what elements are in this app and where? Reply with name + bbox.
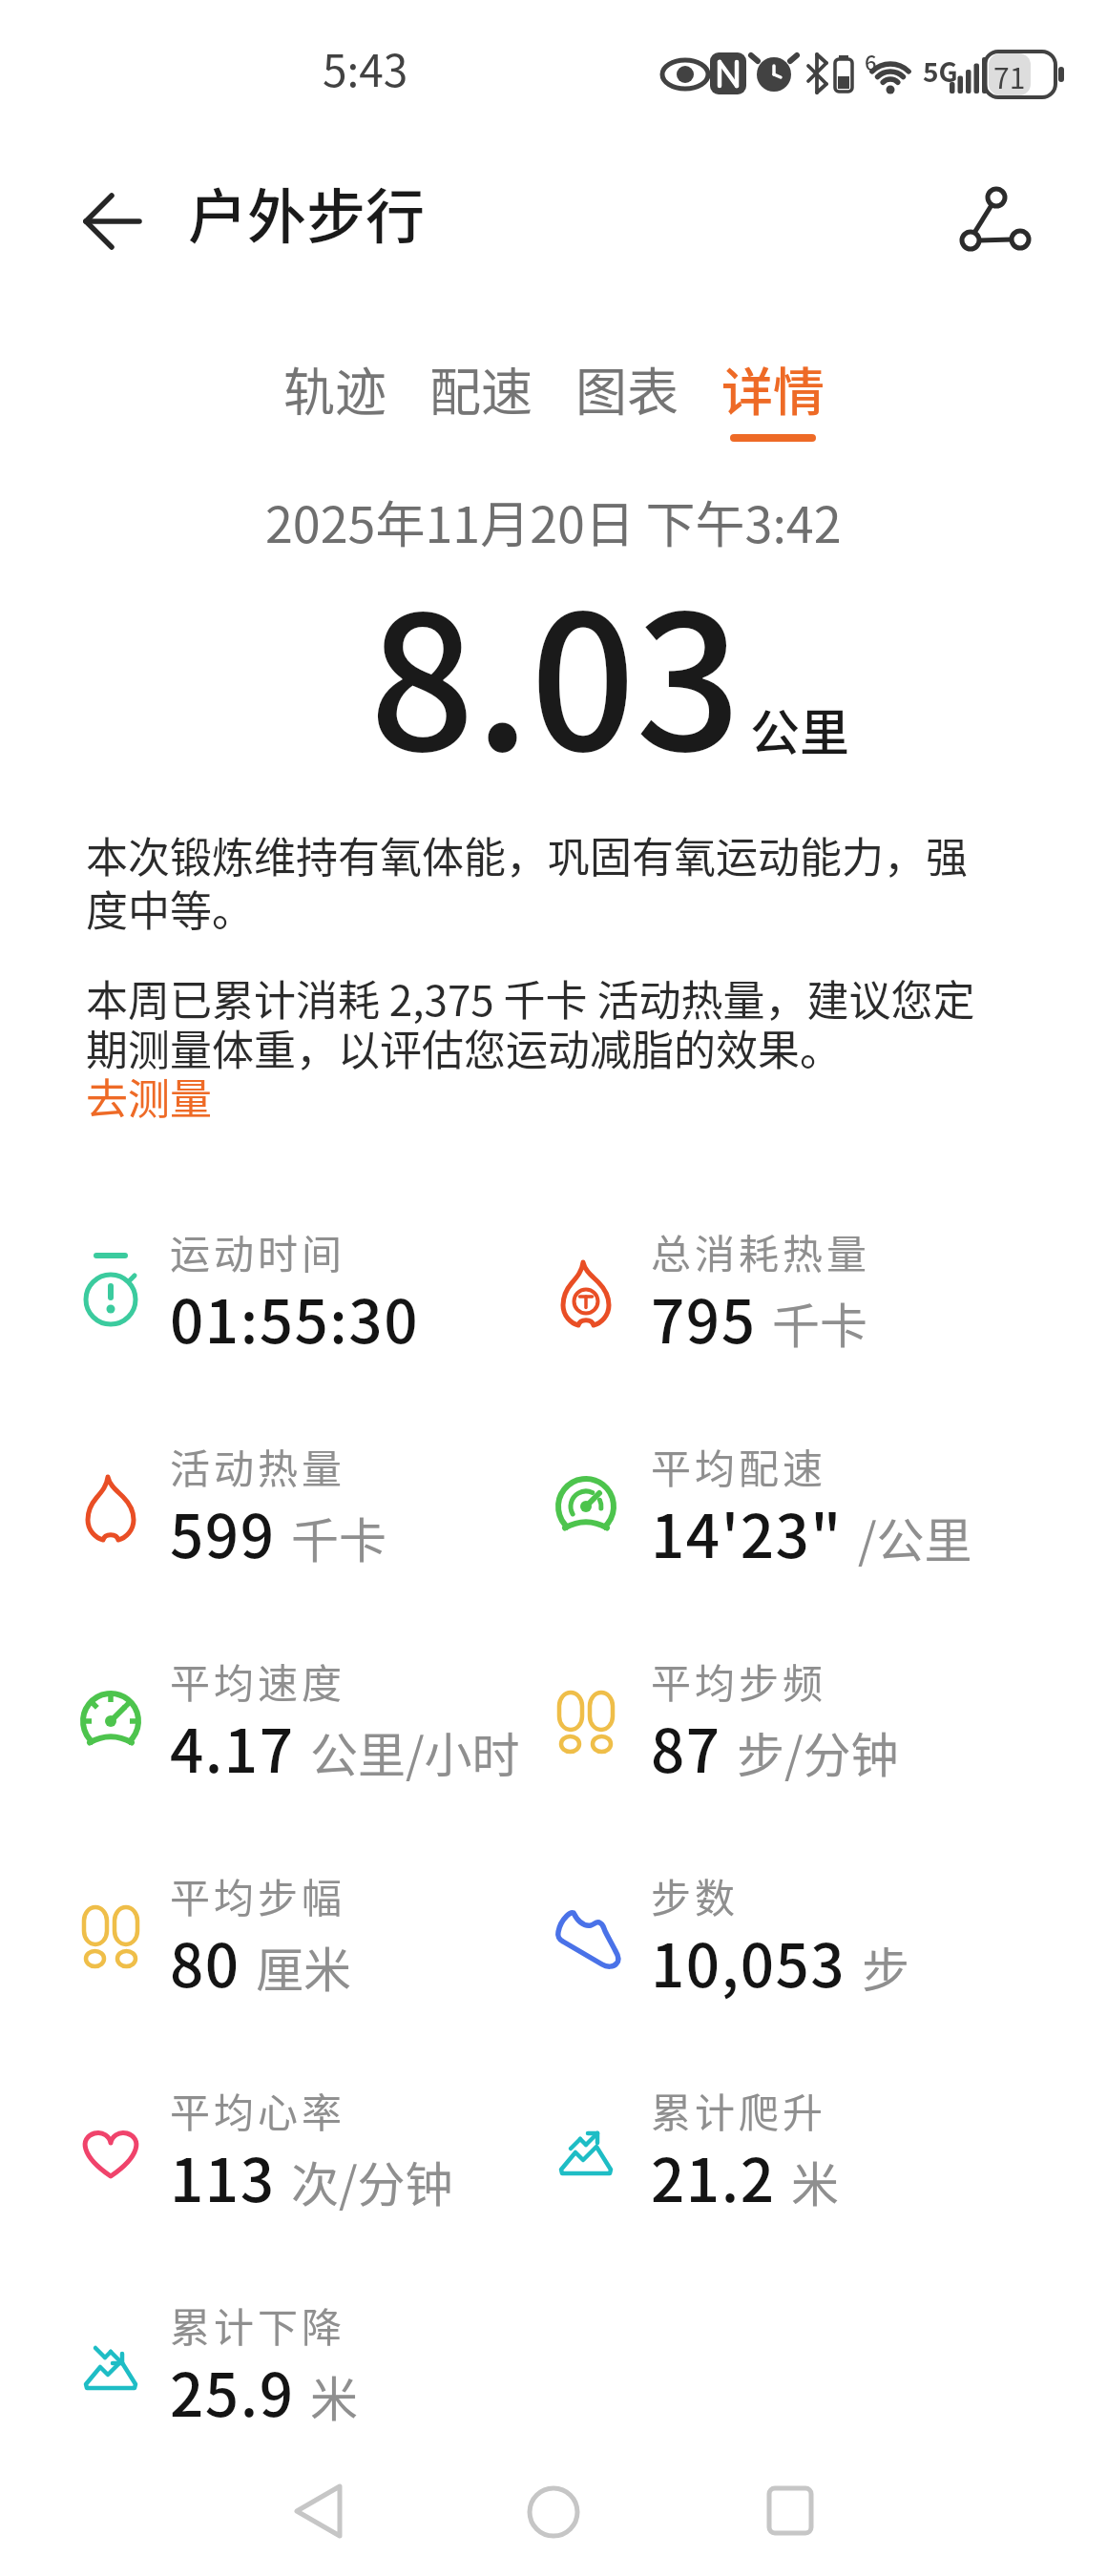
button[interactable] bbox=[59, 170, 155, 265]
staticText: 详情 bbox=[721, 351, 825, 426]
staticText: 累计下降 bbox=[170, 2296, 346, 2354]
button[interactable]: 去测量 bbox=[86, 1066, 212, 1127]
button[interactable]: 图表 bbox=[575, 351, 679, 426]
staticText: 本次锻炼维持有氧体能，巩固有氧运动能力，强 bbox=[86, 824, 968, 885]
staticText: 平均步幅 bbox=[170, 1866, 346, 1924]
staticText: 平均配速 bbox=[651, 1437, 827, 1495]
staticText: 厘米 bbox=[256, 1932, 351, 2001]
staticText: 599 bbox=[170, 1489, 276, 1575]
staticText: 步 bbox=[862, 1932, 909, 2001]
staticText: 公里/小时 bbox=[310, 1717, 520, 1786]
staticText: 80 bbox=[170, 1919, 240, 2005]
staticText: 去测量 bbox=[86, 1066, 212, 1127]
staticText: 累计爬升 bbox=[651, 2081, 827, 2139]
staticText: 平均心率 bbox=[170, 2081, 346, 2139]
staticText: 87 bbox=[651, 1704, 721, 1790]
staticText: 期测量体重，以评估您运动减脂的效果。 bbox=[86, 1017, 842, 1078]
staticText: 6 bbox=[865, 46, 877, 76]
staticText: 运动时间 bbox=[170, 1222, 346, 1280]
staticText: 米 bbox=[791, 2147, 839, 2215]
staticText: 4.17 bbox=[170, 1704, 295, 1790]
button[interactable]: 配速 bbox=[429, 351, 533, 426]
staticText: 平均速度 bbox=[170, 1652, 346, 1710]
staticText: 113 bbox=[170, 2133, 276, 2219]
staticText: 千卡 bbox=[291, 1503, 386, 1571]
staticText: 步/分钟 bbox=[737, 1717, 899, 1786]
staticText: 25.9 bbox=[170, 2348, 295, 2434]
button[interactable] bbox=[738, 2471, 843, 2566]
staticText: 次/分钟 bbox=[291, 2147, 453, 2215]
staticText: 01:55:30 bbox=[170, 1275, 419, 1361]
staticText: 活动热量 bbox=[170, 1437, 346, 1495]
staticText: 米 bbox=[310, 2361, 358, 2430]
staticText: 平均步频 bbox=[651, 1652, 827, 1710]
staticText: /公里 bbox=[858, 1503, 972, 1571]
staticText: 配速 bbox=[429, 351, 533, 426]
button[interactable]: 详情 bbox=[721, 351, 825, 442]
staticText: 10,053 bbox=[651, 1919, 846, 2005]
staticText: 户外步行 bbox=[188, 170, 426, 256]
staticText: 21.2 bbox=[651, 2133, 776, 2219]
staticText: 轨迹 bbox=[283, 351, 386, 426]
staticText: 5:43 bbox=[323, 36, 408, 100]
staticText: 度中等。 bbox=[86, 878, 254, 939]
button[interactable]: 轨迹 bbox=[283, 351, 386, 426]
button[interactable] bbox=[501, 2471, 606, 2566]
staticText: 总消耗热量 bbox=[651, 1222, 871, 1280]
button[interactable] bbox=[950, 172, 1039, 261]
staticText: 14'23" bbox=[651, 1489, 843, 1575]
staticText: 图表 bbox=[575, 351, 679, 426]
staticText: 8.03 bbox=[369, 535, 741, 803]
staticText: 本周已累计消耗 2,375 千卡 活动热量，建议您定 bbox=[86, 967, 975, 1028]
staticText: 795 bbox=[651, 1275, 757, 1361]
staticText: 5G bbox=[923, 52, 958, 91]
staticText: 71 bbox=[993, 55, 1026, 96]
button[interactable] bbox=[267, 2471, 372, 2566]
staticText: 公里 bbox=[750, 694, 850, 765]
staticText: 步数 bbox=[651, 1866, 740, 1924]
staticText: 2025年11月20日 下午3:42 bbox=[265, 486, 842, 557]
staticText: 千卡 bbox=[772, 1288, 867, 1357]
